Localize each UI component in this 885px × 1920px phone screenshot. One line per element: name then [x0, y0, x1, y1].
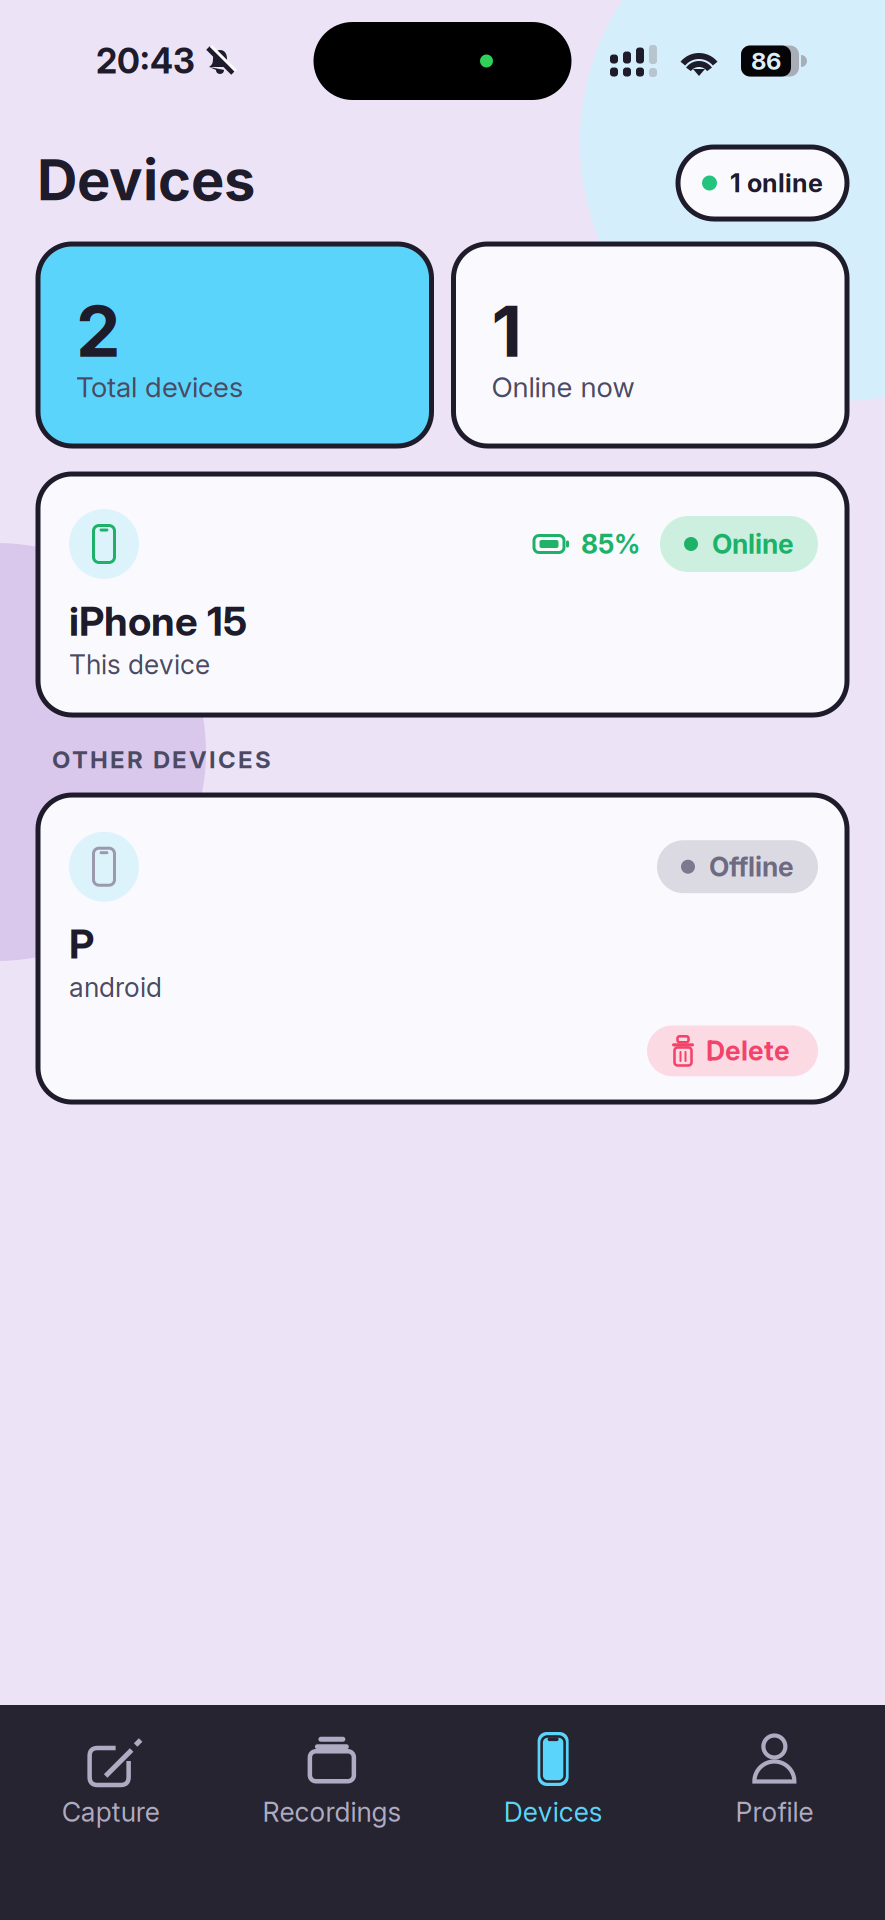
staticText: android	[69, 971, 162, 1003]
staticText: Online now	[491, 370, 634, 404]
staticText: Recordings	[262, 1796, 401, 1828]
staticText: Delete	[706, 1035, 790, 1067]
staticText: Total devices	[76, 370, 243, 404]
button[interactable]: Devices	[442, 1731, 664, 1828]
button[interactable]: Recordings	[221, 1731, 442, 1828]
button[interactable]: 1	[453, 244, 847, 446]
staticText: 86	[751, 46, 781, 75]
staticText: Profile	[735, 1796, 813, 1828]
staticText: iPhone 15	[69, 597, 247, 645]
staticText: Devices	[504, 1796, 603, 1828]
button[interactable]: Profile	[664, 1731, 885, 1828]
staticText: Devices	[37, 146, 255, 214]
staticText: 1	[491, 288, 521, 374]
button[interactable]: 2	[38, 244, 431, 446]
staticText: Offline	[709, 851, 794, 883]
staticText: Online	[712, 528, 794, 560]
staticText: 2	[76, 288, 121, 374]
button[interactable]: 85%	[38, 474, 847, 715]
staticText: 20:43	[96, 40, 195, 82]
button[interactable]: Capture	[0, 1731, 221, 1828]
staticText: P	[69, 920, 94, 968]
staticText: 1 online	[730, 168, 823, 198]
staticText: This device	[69, 648, 210, 681]
button[interactable]: Delete	[647, 1025, 818, 1076]
staticText: O T H E R D E V I C E S	[52, 745, 271, 774]
button[interactable]: 1 online	[678, 147, 847, 219]
staticText: 85%	[581, 528, 640, 560]
staticText: Capture	[62, 1796, 160, 1828]
